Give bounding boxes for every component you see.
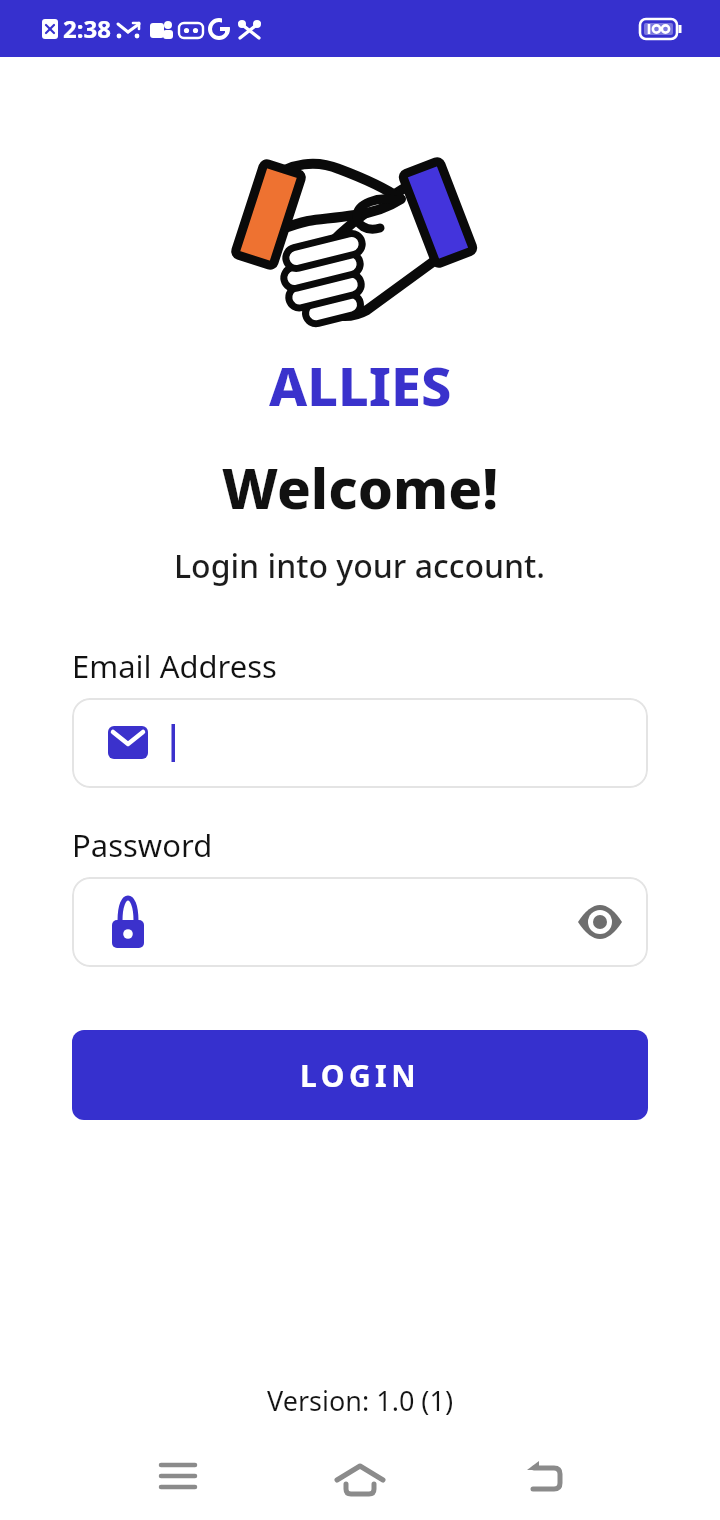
- button[interactable]: [72, 698, 648, 788]
- staticText: Login into your account.: [174, 544, 546, 588]
- button[interactable]: [72, 877, 648, 967]
- button[interactable]: LOGIN: [72, 1030, 648, 1120]
- button[interactable]: [517, 1444, 581, 1508]
- staticText: Welcome!: [222, 449, 499, 525]
- staticText: Email Address: [72, 645, 277, 687]
- button[interactable]: [564, 886, 636, 958]
- staticText: ALLIES: [269, 348, 452, 422]
- staticText: LOGIN: [300, 1055, 421, 1096]
- staticText: 2:38: [63, 12, 111, 45]
- staticText: Password: [72, 824, 213, 866]
- button[interactable]: [149, 1444, 213, 1508]
- staticText: Version: 1.0 (1): [267, 1382, 454, 1419]
- button[interactable]: [328, 1444, 392, 1508]
